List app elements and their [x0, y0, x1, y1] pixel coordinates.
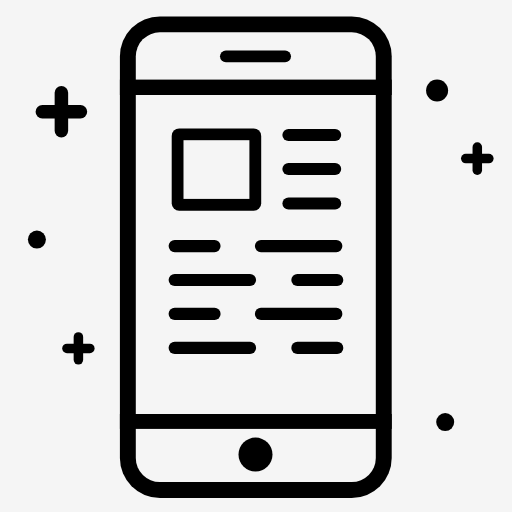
other: Smartphone illustration — [120, 16, 392, 498]
button[interactable]: Article headline — [282, 129, 341, 210]
button[interactable]: Open article image — [172, 128, 262, 210]
button[interactable]: Article line 1 — [169, 234, 344, 258]
button[interactable]: Home button — [239, 438, 273, 472]
button[interactable]: Article line 3 — [169, 302, 344, 326]
button[interactable]: Article line 4 — [169, 336, 344, 360]
button[interactable]: Article line 2 — [169, 268, 344, 292]
